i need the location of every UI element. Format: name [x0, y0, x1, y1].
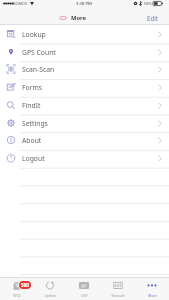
- button[interactable]: Lookup: [0, 25, 169, 43]
- staticText: UHF: [81, 293, 88, 298]
- staticText: BOMOV: [13, 1, 28, 6]
- staticText: More: [71, 14, 87, 22]
- staticText: Update: [44, 293, 56, 298]
- button[interactable]: Update: [33, 278, 67, 300]
- staticText: Barcode: [111, 293, 125, 298]
- staticText: FindIt: [22, 101, 41, 110]
- staticText: Logout: [22, 154, 45, 163]
- staticText: Settings: [22, 119, 48, 128]
- button[interactable]: UHF: [67, 278, 101, 300]
- staticText: More: [148, 293, 157, 298]
- staticText: GPS Count: [22, 48, 56, 57]
- staticText: 58%: [144, 1, 152, 6]
- button[interactable]: Logout: [0, 149, 169, 167]
- staticText: About: [22, 136, 42, 145]
- button[interactable]: Barcode: [101, 278, 135, 300]
- staticText: RFID: [13, 293, 21, 298]
- staticText: 500: [21, 282, 29, 288]
- button[interactable]: Forms: [0, 78, 169, 96]
- button[interactable]: RFID: [0, 278, 33, 300]
- button[interactable]: More: [135, 278, 169, 300]
- staticText: Edit: [147, 14, 159, 22]
- button[interactable]: Edit: [137, 0, 169, 25]
- button[interactable]: FindIt: [0, 96, 169, 114]
- button[interactable]: GPS Count: [0, 43, 169, 61]
- staticText: 3:38 PM: [76, 1, 92, 7]
- button[interactable]: Scan-Scan: [0, 60, 169, 78]
- staticText: Scan-Scan: [22, 65, 55, 74]
- staticText: Lookup: [22, 30, 46, 39]
- button[interactable]: Settings: [0, 114, 169, 132]
- button[interactable]: About: [0, 131, 169, 149]
- staticText: Forms: [22, 83, 43, 92]
